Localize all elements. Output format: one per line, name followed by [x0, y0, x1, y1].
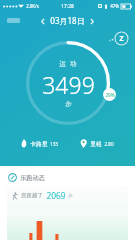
- staticText: 29%: [105, 92, 115, 98]
- button[interactable]: 乐跑动态: [0, 173, 135, 182]
- staticText: 里程: [90, 140, 102, 147]
- staticText: 步: [65, 100, 72, 108]
- button[interactable]: Next day: [87, 16, 97, 26]
- staticText: Z: [119, 34, 124, 44]
- button[interactable]: 里程: [80, 139, 114, 148]
- staticText: 您超越了: [21, 192, 43, 199]
- button[interactable]: Previous day: [38, 16, 48, 26]
- staticText: 步: [68, 193, 73, 199]
- staticText: 3499: [42, 69, 95, 100]
- button[interactable]: 您超越了: [7, 186, 128, 240]
- button[interactable]: Sleep: [114, 31, 129, 46]
- staticText: 47%: [110, 3, 119, 9]
- button[interactable]: 运 动: [25, 40, 111, 126]
- staticText: 03月18日: [50, 15, 85, 26]
- button[interactable]: Menu: [7, 18, 20, 23]
- staticText: 2.0K/s: [26, 3, 39, 9]
- button[interactable]: 卡路里: [21, 139, 58, 148]
- staticText: 2069: [46, 190, 66, 201]
- button[interactable]: 29%: [103, 88, 116, 101]
- staticText: 卡路里: [30, 140, 48, 147]
- staticText: 17:28: [61, 3, 74, 10]
- staticText: 乐跑动态: [20, 174, 45, 182]
- staticText: 2.80: [104, 141, 114, 147]
- staticText: 133: [50, 141, 58, 147]
- staticText: 运 动: [59, 59, 78, 68]
